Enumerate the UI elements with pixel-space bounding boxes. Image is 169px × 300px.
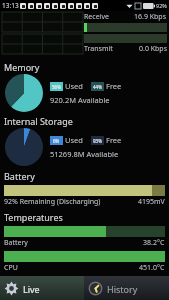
- staticText: Free: [106, 81, 122, 91]
- staticText: Internal Storage: [4, 115, 73, 127]
- staticText: 38.2°C: [143, 238, 165, 248]
- staticText: 13:13: [2, 1, 19, 10]
- staticText: Temperatures: [4, 211, 63, 223]
- staticText: 16.9 Kbps: [134, 12, 167, 22]
- staticText: Used: [65, 81, 83, 91]
- staticText: 56%: [52, 84, 61, 90]
- staticText: Battery: [4, 170, 35, 182]
- staticText: 920.2M Available: [50, 95, 110, 105]
- staticText: 0.0 Kbps: [139, 44, 167, 54]
- staticText: History: [107, 283, 138, 295]
- staticText: 451.0°C: [139, 263, 165, 273]
- staticText: Receive: [84, 12, 109, 22]
- button[interactable]: History: [84, 276, 169, 300]
- staticText: Used: [65, 135, 83, 145]
- button[interactable]: Live: [0, 276, 84, 300]
- staticText: 92% Remaining (Discharging): [4, 197, 101, 207]
- staticText: Free: [106, 135, 122, 145]
- other: History: [88, 281, 103, 296]
- other: Live: [4, 281, 19, 296]
- staticText: Memory: [4, 61, 40, 73]
- staticText: 4195mV: [138, 197, 165, 207]
- staticText: 6%: [53, 138, 60, 144]
- staticText: 44%: [93, 84, 102, 90]
- staticText: 92%: [156, 2, 167, 9]
- staticText: Transmit: [84, 44, 113, 54]
- staticText: CPU: [4, 263, 18, 273]
- staticText: 51269.8M Available: [50, 149, 119, 159]
- staticText: 93%: [93, 138, 102, 144]
- staticText: Battery: [4, 238, 28, 248]
- staticText: Live: [23, 283, 40, 295]
